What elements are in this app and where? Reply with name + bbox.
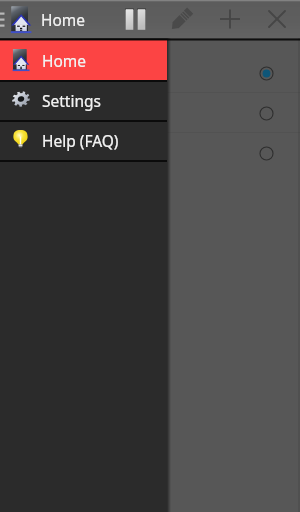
- button[interactable]: Settings: [0, 80, 167, 120]
- staticText: Help (FAQ): [42, 130, 119, 151]
- button[interactable]: [0, 133, 300, 173]
- button[interactable]: Home: [0, 40, 167, 80]
- button[interactable]: Pause: [112, 0, 159, 38]
- button[interactable]: Edit: [159, 0, 206, 38]
- button[interactable]: Open navigation drawer: [0, 0, 6, 38]
- staticText: Settings: [42, 90, 101, 111]
- staticText: Home: [42, 50, 87, 71]
- button[interactable]: Add: [206, 0, 253, 38]
- button[interactable]: [0, 53, 300, 93]
- staticText: Home: [41, 9, 86, 30]
- button[interactable]: [0, 93, 300, 133]
- button[interactable]: Close: [253, 0, 300, 38]
- button[interactable]: Help (FAQ): [0, 120, 167, 160]
